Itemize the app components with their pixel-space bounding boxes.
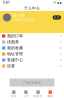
staticText: 设置 <box>7 63 15 68</box>
staticText: 个人中心 <box>24 6 40 11</box>
staticText: 我的订单 <box>7 33 23 38</box>
staticText: 优惠券 <box>7 39 19 44</box>
staticText: 13800138000 <box>13 18 35 22</box>
staticText: 我的 <box>47 94 53 98</box>
button[interactable]: 我的订单 <box>0 33 64 39</box>
staticText: 张小明 <box>13 13 25 18</box>
staticText: 广告占位区域 <box>23 81 41 84</box>
button[interactable]: 设置 <box>0 63 64 69</box>
staticText: 会员 <box>54 16 60 19</box>
button[interactable]: 我的 <box>44 88 56 99</box>
staticText: 客服中心 <box>7 57 23 62</box>
staticText: 地址管理 <box>7 51 23 56</box>
staticText: •ıl ◉ ▮ <box>53 1 61 4</box>
button[interactable]: 客服中心 <box>0 57 64 63</box>
staticText: 分类 <box>23 94 29 98</box>
button[interactable]: 我的收藏 <box>0 45 64 51</box>
button[interactable]: 优惠券 <box>0 39 64 45</box>
staticText: 购物车 <box>34 94 43 98</box>
staticText: 首页 <box>11 94 17 98</box>
button[interactable]: 首页 <box>8 88 20 99</box>
staticText: 我的收藏 <box>7 45 23 50</box>
button[interactable]: 购物车 <box>32 88 44 99</box>
button[interactable]: 分类 <box>20 88 32 99</box>
button[interactable]: 地址管理 <box>0 51 64 57</box>
staticText: 9:41 <box>3 1 10 4</box>
